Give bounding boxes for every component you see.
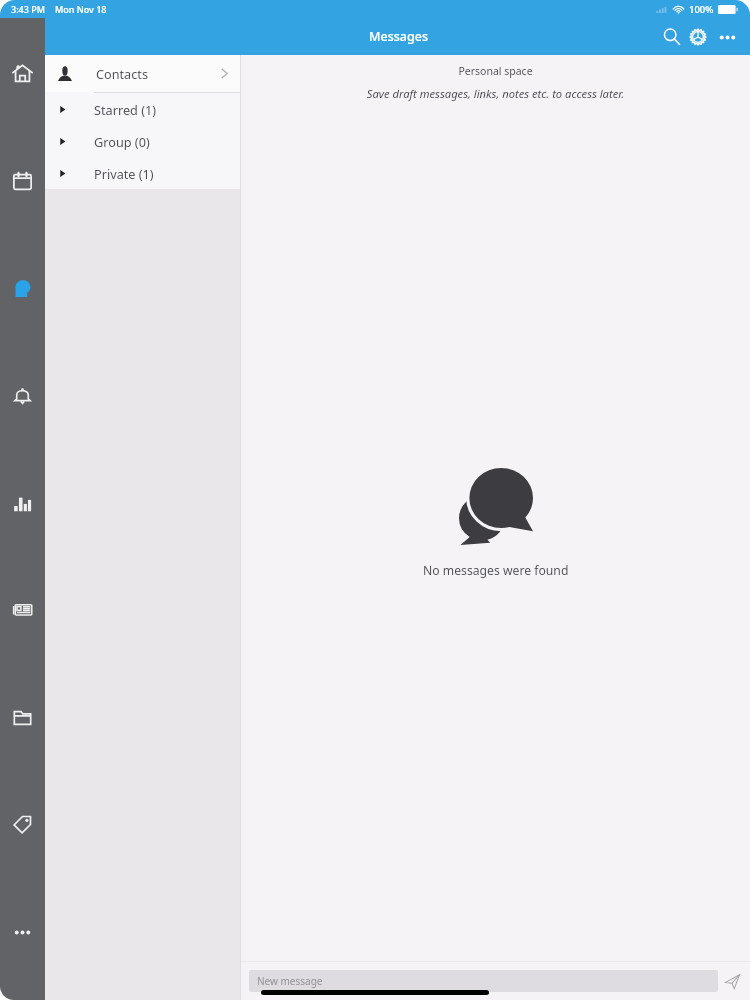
- button[interactable]: Files: [0, 695, 45, 740]
- button[interactable]: New message: [249, 970, 718, 992]
- button[interactable]: Private (1): [45, 157, 240, 189]
- staticText: 100%: [689, 3, 714, 16]
- staticText: New message: [257, 974, 323, 988]
- staticText: Contacts: [96, 65, 148, 82]
- staticText: No messages were found: [423, 562, 569, 579]
- button[interactable]: Messages: [0, 266, 45, 311]
- button[interactable]: Tags: [0, 802, 45, 847]
- button[interactable]: More: [0, 910, 45, 955]
- button[interactable]: Group (0): [45, 125, 240, 157]
- button[interactable]: Contacts: [45, 55, 240, 92]
- button[interactable]: Statistics: [0, 481, 45, 526]
- staticText: Starred (1): [94, 101, 157, 118]
- staticText: Save draft messages, links, notes etc. t…: [241, 86, 750, 101]
- button[interactable]: Calendar: [0, 159, 45, 204]
- button[interactable]: Home: [0, 51, 45, 96]
- staticText: Messages: [369, 28, 428, 45]
- staticText: Personal space: [241, 64, 750, 78]
- button[interactable]: Send: [718, 967, 746, 995]
- button[interactable]: Notifications: [0, 373, 45, 418]
- staticText: Private (1): [94, 165, 154, 182]
- button[interactable]: Settings: [685, 21, 711, 53]
- button[interactable]: Starred (1): [45, 93, 240, 125]
- button[interactable]: More options: [711, 21, 743, 53]
- staticText: Group (0): [94, 133, 150, 150]
- button[interactable]: Search: [659, 21, 685, 53]
- staticText: 3:43 PM: [11, 3, 45, 15]
- staticText: Mon Nov 18: [55, 3, 107, 15]
- button[interactable]: News: [0, 587, 45, 632]
